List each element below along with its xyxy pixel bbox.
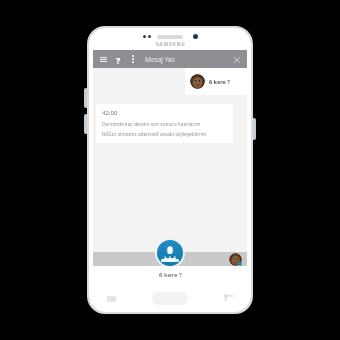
button[interactable]: Close bbox=[231, 54, 242, 65]
button[interactable]: Record voice message bbox=[157, 240, 183, 266]
button[interactable]: Profile bbox=[229, 253, 242, 266]
staticText: Dersimde kaç dersim son sonucu hatırları… bbox=[102, 121, 201, 128]
button[interactable]: 6 kere ? bbox=[185, 68, 247, 95]
button[interactable]: Back bbox=[223, 295, 233, 302]
button[interactable]: More options bbox=[128, 54, 138, 64]
staticText: 6 kere ? bbox=[209, 78, 230, 85]
staticText: SAMSUNG bbox=[156, 41, 186, 48]
button[interactable]: Help bbox=[113, 54, 123, 64]
staticText: 6 kere ? bbox=[159, 271, 182, 279]
staticText: ? bbox=[116, 54, 121, 64]
staticText: Mesaj Yaz bbox=[145, 55, 175, 64]
button[interactable]: Home bbox=[152, 292, 188, 305]
button[interactable]: Menu bbox=[98, 54, 108, 64]
staticText: 42;00 bbox=[102, 109, 118, 117]
button[interactable]: 42;00 bbox=[96, 104, 233, 143]
staticText: RAĞtıt olmamız alternatif cevabı söyleye… bbox=[102, 131, 207, 138]
